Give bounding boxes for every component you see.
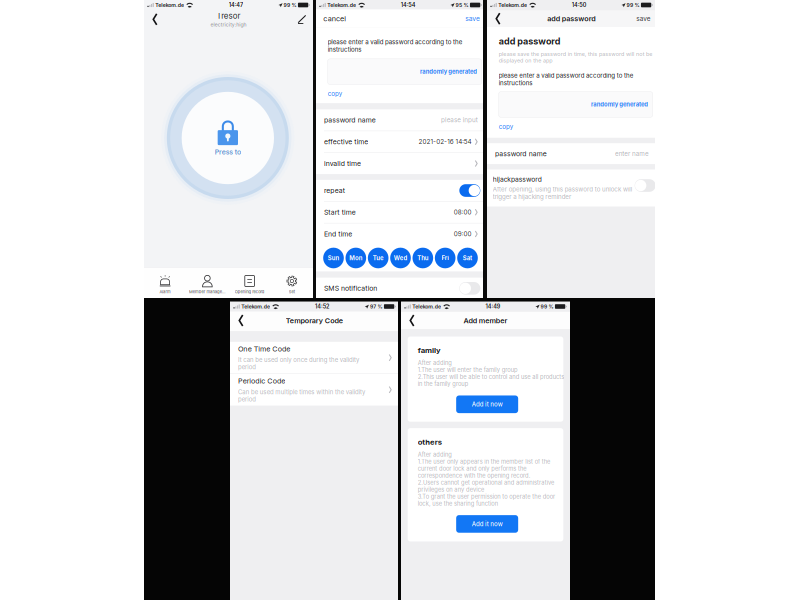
button[interactable]: Back bbox=[512, 37, 528, 75]
staticText: Telekom.de bbox=[350, 6, 436, 24]
button[interactable]: Back bbox=[426, 339, 442, 377]
button[interactable]: Periodic Code bbox=[230, 519, 737, 600]
staticText: 99 % bbox=[563, 6, 603, 24]
staticText: Add it now bbox=[613, 599, 706, 600]
staticText: Press to bbox=[356, 443, 435, 469]
staticText: password name bbox=[340, 348, 495, 373]
staticText: add password bbox=[522, 107, 707, 140]
staticText: After opening, using this password to un… bbox=[504, 557, 800, 600]
staticText: 2021-02-16 14:54 bbox=[623, 414, 782, 437]
button[interactable]: randomly generated bbox=[628, 205, 799, 226]
staticText: invalid time bbox=[340, 478, 451, 503]
staticText: It can be used only once during the vali… bbox=[254, 466, 618, 509]
staticText: cancel bbox=[338, 42, 406, 69]
staticText: Can be used multiple times within the va… bbox=[254, 562, 636, 600]
staticText: Telekom.de bbox=[521, 6, 607, 24]
staticText: 14:52 bbox=[485, 306, 528, 326]
staticText: copy bbox=[351, 270, 394, 292]
staticText: 14:49 bbox=[654, 306, 699, 326]
button[interactable]: password name bbox=[487, 429, 800, 492]
staticText: Temporary Code bbox=[397, 345, 569, 372]
button[interactable]: password name bbox=[316, 328, 800, 392]
staticText: randomly generated bbox=[628, 205, 799, 226]
staticText: 97 % bbox=[650, 307, 689, 326]
button[interactable]: copy bbox=[351, 270, 394, 292]
staticText: electricity:high bbox=[343, 64, 451, 83]
button[interactable]: effective time bbox=[316, 393, 800, 457]
staticText: One Time Code bbox=[254, 431, 411, 457]
staticText: Telekom.de bbox=[435, 307, 521, 326]
staticText: hijackpassword bbox=[504, 525, 651, 550]
staticText: Telekom.de bbox=[178, 6, 264, 24]
staticText: Tresor bbox=[361, 33, 433, 62]
button[interactable]: Edit bbox=[604, 44, 631, 72]
staticText: family bbox=[451, 433, 520, 462]
staticText: Add member bbox=[588, 345, 720, 372]
button[interactable]: invalid time bbox=[316, 459, 800, 523]
button[interactable]: Back bbox=[255, 339, 271, 377]
staticText: repeat bbox=[340, 559, 403, 584]
button[interactable]: One Time Code bbox=[230, 422, 737, 517]
button[interactable]: Press to bbox=[193, 212, 597, 600]
staticText: please enter a valid password according … bbox=[351, 115, 755, 159]
staticText: 14:54 bbox=[570, 5, 614, 25]
button[interactable]: repeat bbox=[316, 540, 800, 600]
button[interactable]: cancel bbox=[338, 42, 406, 69]
staticText: password name bbox=[511, 448, 666, 473]
staticText: 14:47 bbox=[398, 5, 442, 25]
staticText: please save the password in time, this p… bbox=[522, 152, 800, 191]
staticText: please enter a valid password according … bbox=[522, 215, 800, 260]
staticText: copy bbox=[522, 369, 565, 392]
staticText: effective time bbox=[340, 413, 473, 438]
staticText: Telekom.de bbox=[264, 307, 350, 326]
staticText: After adding 1.The user will enter the f… bbox=[451, 476, 800, 559]
button[interactable]: copy bbox=[522, 369, 565, 392]
button[interactable]: Add it now bbox=[566, 583, 752, 600]
